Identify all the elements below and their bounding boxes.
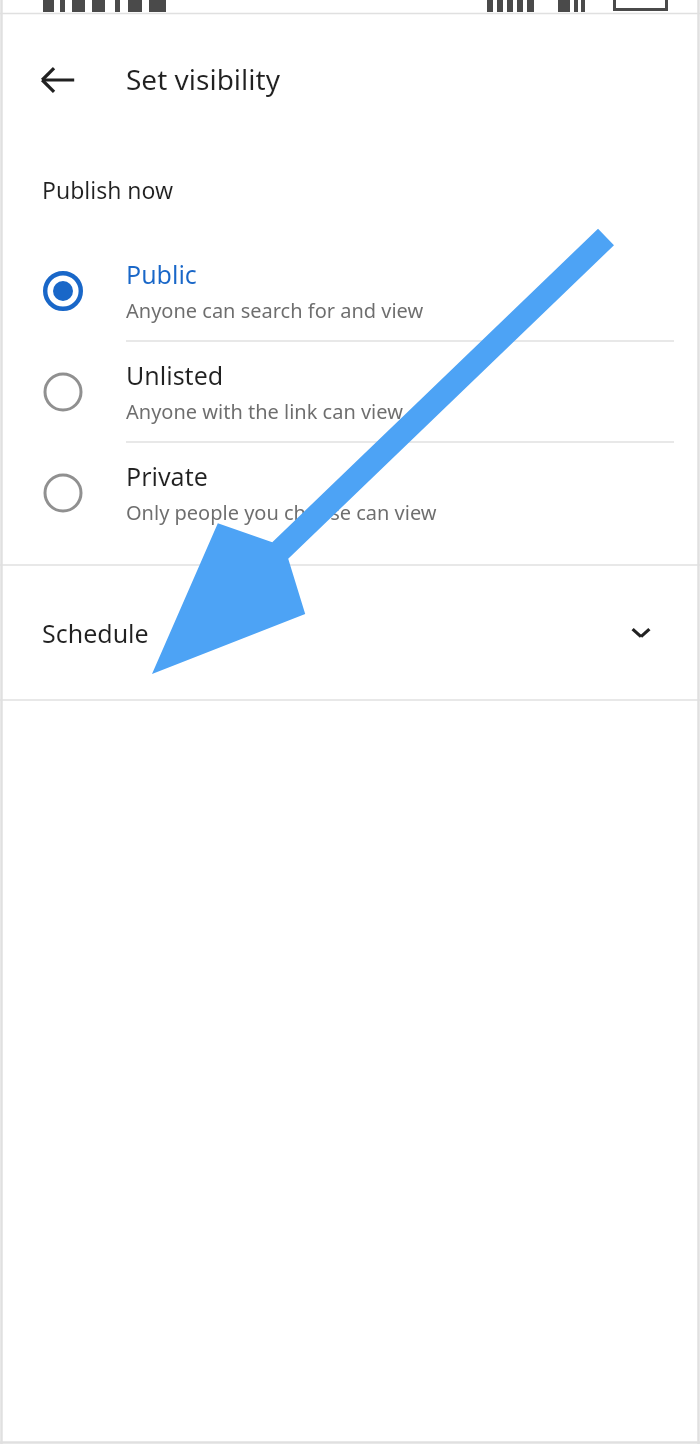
staticText: Unlisted [126,358,224,392]
other: Expand schedule [624,616,658,650]
button[interactable]: Private [0,443,700,542]
staticText: Public [126,257,197,291]
staticText: Only people you choose can view [126,499,437,526]
button[interactable]: Public [0,241,700,340]
staticText: Set visibility [126,60,280,98]
staticText: Anyone can search for and view [126,297,424,324]
staticText: Schedule [42,616,149,650]
staticText: Private [126,459,208,493]
button[interactable]: Back [24,46,92,114]
button[interactable]: Schedule [0,566,700,699]
staticText: Publish now [42,174,174,205]
staticText: Anyone with the link can view [126,398,403,425]
button[interactable]: Unlisted [0,342,700,441]
